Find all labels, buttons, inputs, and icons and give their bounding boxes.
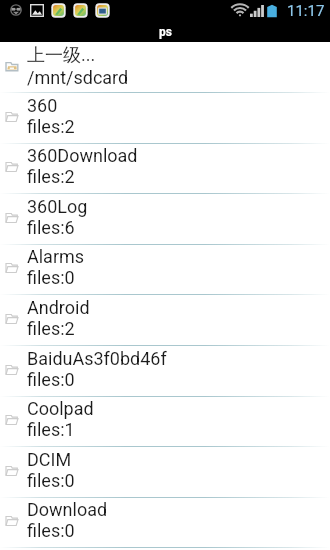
staticText: files:0 bbox=[27, 267, 75, 288]
staticText: 360Log bbox=[27, 196, 88, 217]
button[interactable]: 360Log bbox=[0, 194, 330, 245]
button[interactable]: 360Download bbox=[0, 143, 330, 194]
staticText: files:0 bbox=[27, 520, 75, 541]
button[interactable]: BaiduAs3f0bd46f bbox=[0, 346, 330, 397]
staticText: files:1 bbox=[27, 419, 75, 440]
button[interactable]: Alarms bbox=[0, 244, 330, 295]
staticText: Alarms bbox=[27, 246, 85, 267]
staticText: /mnt/sdcard bbox=[27, 67, 129, 88]
button[interactable]: Download bbox=[0, 497, 330, 548]
staticText: Android bbox=[27, 297, 90, 318]
staticText: Coolpad bbox=[27, 398, 94, 419]
button[interactable]: DCIM bbox=[0, 447, 330, 498]
staticText: DCIM bbox=[27, 449, 72, 470]
staticText: BaiduAs3f0bd46f bbox=[27, 348, 167, 369]
staticText: files:0 bbox=[27, 369, 75, 390]
button[interactable]: 360 bbox=[0, 93, 330, 144]
staticText: files:2 bbox=[27, 166, 75, 187]
staticText: files:0 bbox=[27, 470, 75, 491]
button[interactable]: Android bbox=[0, 295, 330, 346]
staticText: files:2 bbox=[27, 318, 75, 339]
staticText: Download bbox=[27, 499, 108, 520]
staticText: ps bbox=[159, 25, 172, 39]
staticText: 上一级... bbox=[27, 44, 96, 67]
staticText: files:6 bbox=[27, 217, 75, 238]
button[interactable]: 上一级... bbox=[0, 42, 330, 93]
staticText: 11:17 bbox=[287, 2, 325, 20]
staticText: 360 bbox=[27, 95, 58, 116]
button[interactable]: Coolpad bbox=[0, 396, 330, 447]
staticText: files:2 bbox=[27, 116, 75, 137]
staticText: 360Download bbox=[27, 145, 138, 166]
